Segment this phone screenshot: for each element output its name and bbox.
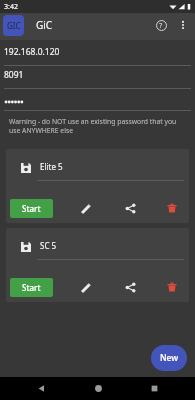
staticText: GiC [36,18,53,32]
button[interactable]: Start [10,199,53,218]
button[interactable]: Delete [160,196,184,220]
staticText: SC 5 [40,240,57,251]
staticText: GIC [7,20,21,31]
staticText: ? [159,20,163,30]
button[interactable]: Delete [160,275,184,299]
staticText: 192.168.0.120 [4,46,60,58]
button[interactable]: Share [118,275,142,299]
staticText: Warning - do NOT use an existing passwor… [9,117,183,135]
staticText: Elite 5 [40,161,63,172]
staticText: New [160,352,179,364]
button[interactable]: Edit [74,196,98,220]
button[interactable]: New [151,345,187,371]
staticText: 8091 [4,69,24,81]
button[interactable]: More options [173,15,193,35]
button[interactable]: Edit [74,275,98,299]
button[interactable]: Help [149,13,173,37]
button[interactable]: Start [10,278,53,297]
button[interactable]: Share [118,196,142,220]
staticText: Start [22,203,41,214]
button[interactable]: Home [83,377,113,400]
button[interactable]: Back [26,377,56,400]
staticText: Start [22,282,41,293]
staticText: 3:42 [4,2,18,12]
button[interactable]: Recents [139,377,169,400]
